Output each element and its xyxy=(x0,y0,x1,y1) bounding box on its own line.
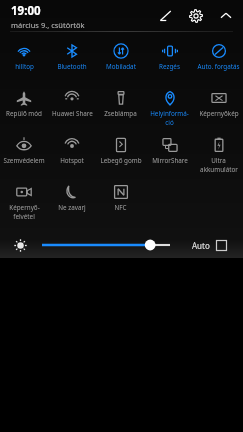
button[interactable]: Auto. forgatás xyxy=(194,38,243,85)
button[interactable]: Settings xyxy=(185,5,207,27)
staticText: Mobiladat xyxy=(106,62,136,71)
button[interactable]: MirrorShare xyxy=(145,132,194,179)
button[interactable]: Szemvédelem xyxy=(0,132,48,179)
staticText: Huawei Share xyxy=(52,109,93,118)
staticText: ció xyxy=(165,118,174,127)
button[interactable]: Bluetooth xyxy=(48,38,96,85)
button[interactable]: Lebegő gomb xyxy=(96,132,145,179)
staticText: NFC xyxy=(114,203,127,212)
button[interactable]: Edit quick settings xyxy=(155,5,177,27)
staticText: Auto. forgatás xyxy=(197,62,240,71)
staticText: Ultra xyxy=(211,156,226,165)
button[interactable]: Képernyő- xyxy=(0,179,48,226)
button[interactable]: Repülő mód xyxy=(0,85,48,132)
button[interactable]: Képernyőkép xyxy=(194,85,243,132)
staticText: Ne zavarj xyxy=(58,203,86,212)
staticText: 19:00 xyxy=(11,3,41,19)
staticText: Képernyőkép xyxy=(199,109,239,118)
staticText: Helyinformá- xyxy=(150,109,189,118)
button[interactable]: Hotspot xyxy=(48,132,96,179)
button[interactable]: Mobiladat xyxy=(96,38,145,85)
staticText: Bluetooth xyxy=(57,62,87,71)
staticText: Rezgés xyxy=(159,62,180,71)
staticText: Szemvédelem xyxy=(3,156,45,165)
button[interactable]: NFC xyxy=(96,179,145,226)
staticText: akkumulátor xyxy=(200,165,238,174)
staticText: március 9., csütörtök xyxy=(11,20,85,30)
staticText: hilltop xyxy=(15,62,34,71)
staticText: Hotspot xyxy=(60,156,84,165)
staticText: felvétel xyxy=(13,212,35,221)
button[interactable]: Zseblámpa xyxy=(96,85,145,132)
staticText: Zseblámpa xyxy=(104,109,137,118)
button[interactable]: Brightness slider xyxy=(38,235,172,255)
staticText: Lebegő gomb xyxy=(100,156,142,165)
button[interactable]: Auto xyxy=(192,240,227,251)
staticText: Auto xyxy=(192,240,210,251)
button[interactable]: Collapse xyxy=(215,5,237,27)
staticText: Repülő mód xyxy=(6,109,42,118)
button[interactable]: Huawei Share xyxy=(48,85,96,132)
staticText: MirrorShare xyxy=(152,156,188,165)
button[interactable]: Ultra xyxy=(194,132,243,179)
button[interactable]: Ne zavarj xyxy=(48,179,96,226)
button[interactable]: Helyinformá- xyxy=(145,85,194,132)
button[interactable]: Rezgés xyxy=(145,38,194,85)
button[interactable]: Brightness xyxy=(11,236,29,254)
button[interactable]: hilltop xyxy=(0,38,48,85)
staticText: Képernyő- xyxy=(9,203,40,212)
